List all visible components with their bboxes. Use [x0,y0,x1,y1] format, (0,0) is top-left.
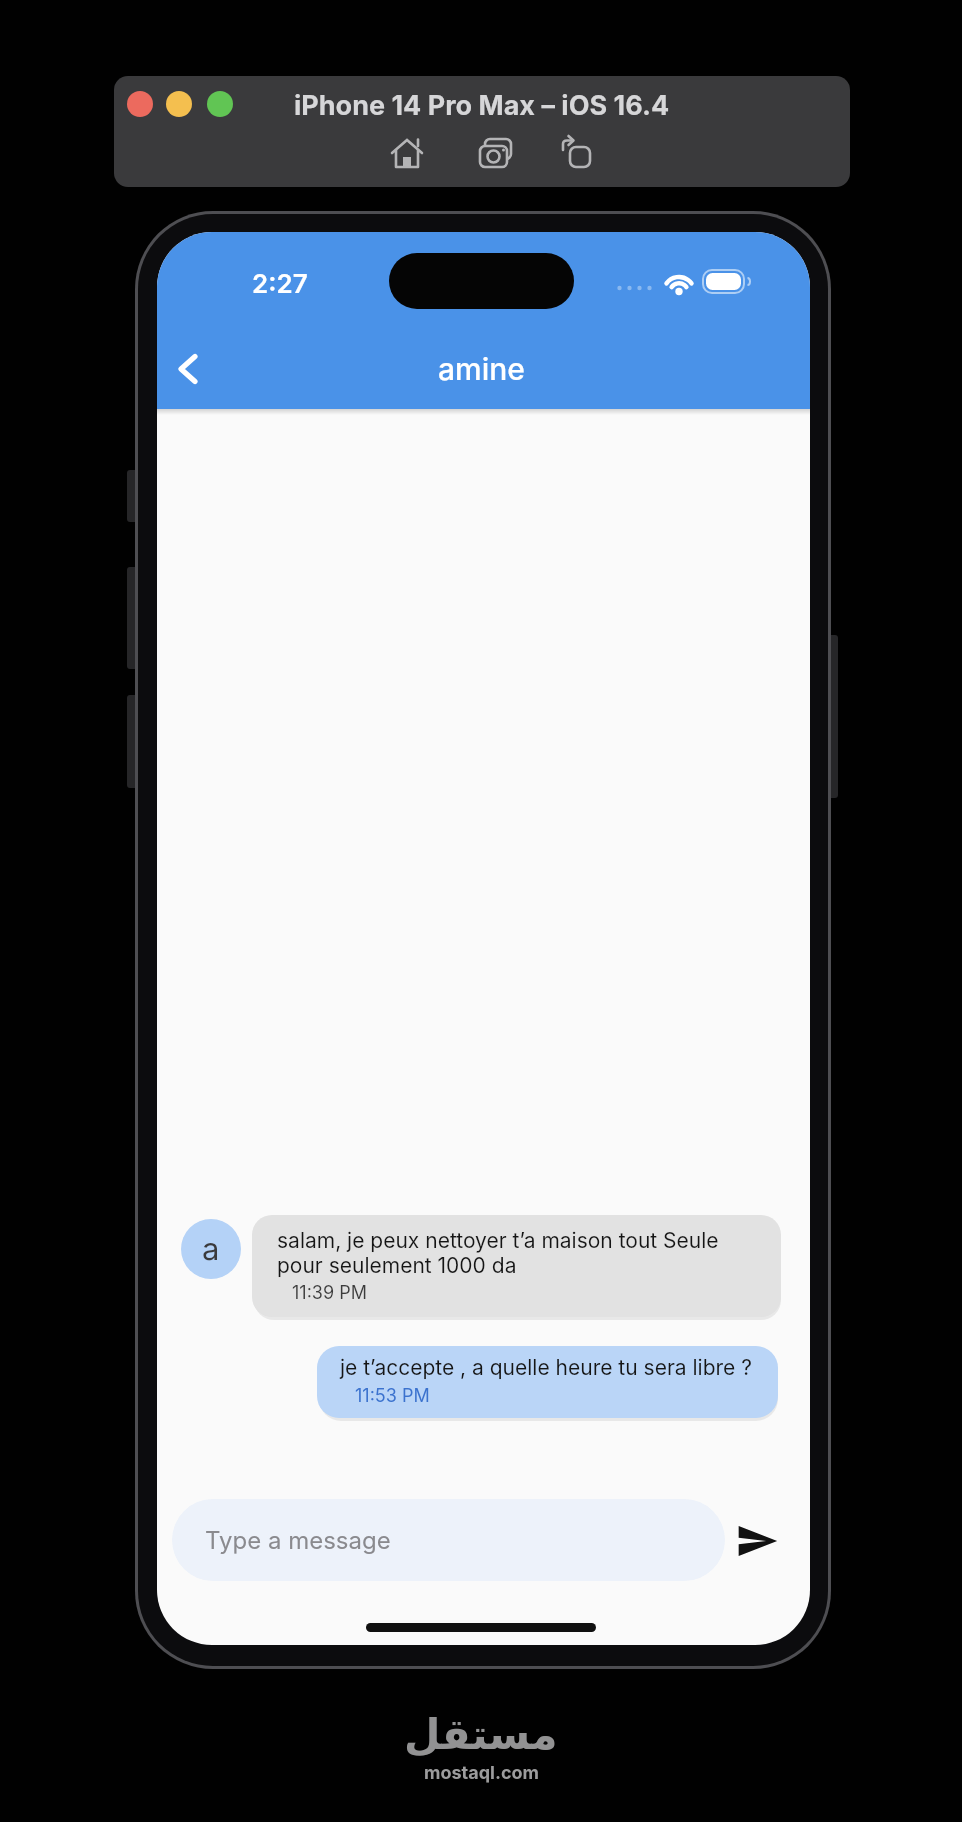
staticText: 11:53 PM [355,1385,430,1407]
button[interactable] [166,91,192,117]
staticText: pour seulement 1000 da [277,1253,517,1278]
staticText: 11:39 PM [292,1282,367,1304]
staticText: Type a message [205,1526,391,1555]
staticText: mostaql.com [424,1762,539,1784]
button[interactable] [165,344,215,394]
button[interactable] [207,91,233,117]
staticText: je t’accepte , a quelle heure tu sera li… [340,1355,752,1380]
staticText: amine [438,351,525,387]
staticText: salam, je peux nettoyer t’a maison tout … [277,1228,719,1253]
button[interactable] [127,91,153,117]
button[interactable]: Type a message [172,1499,725,1581]
button[interactable] [387,134,427,174]
button[interactable] [476,134,516,174]
staticText: iPhone 14 Pro Max – iOS 16.4 [294,89,670,122]
staticText: 2:27 [252,268,308,299]
staticText: مستقل [404,1710,558,1759]
staticText: a [202,1230,220,1268]
button[interactable] [727,1513,787,1569]
button[interactable] [556,134,596,174]
